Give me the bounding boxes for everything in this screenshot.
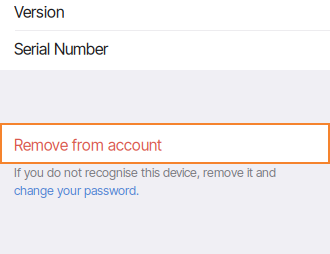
staticText: Serial Number [14, 39, 108, 59]
staticText: If you do not recognise this device, rem… [14, 165, 276, 180]
staticText: Remove from account [14, 136, 162, 154]
button[interactable]: Remove from account [1, 124, 329, 163]
button[interactable]: Version [0, 0, 330, 30]
button[interactable]: Serial Number [0, 31, 330, 70]
button[interactable]: change your password. [14, 183, 139, 198]
staticText: Version [14, 2, 65, 22]
staticText: change your password. [14, 183, 139, 198]
